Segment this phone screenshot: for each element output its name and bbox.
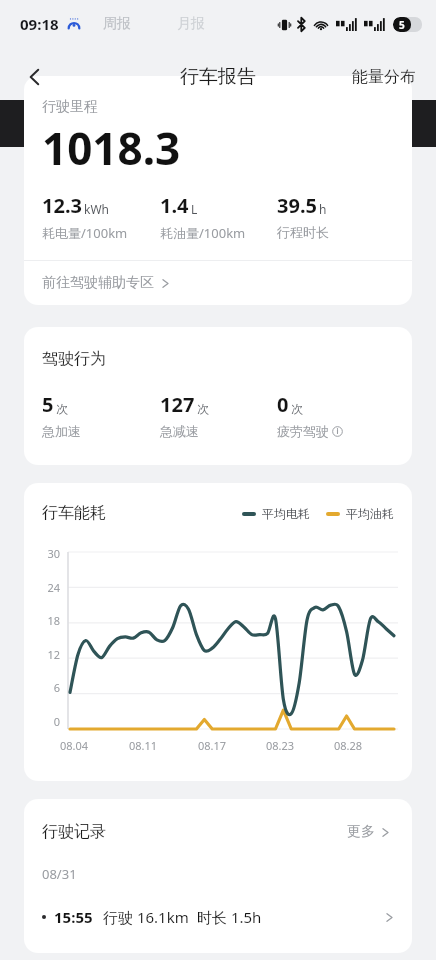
staticText: kWh (84, 201, 109, 217)
staticText: h (319, 201, 327, 217)
staticText: 周报 (103, 15, 131, 33)
staticText: 耗电量/100km (42, 224, 128, 242)
staticText: 15:55 (54, 907, 93, 927)
staticText: 08.04 (60, 738, 129, 753)
staticText: 平均油耗 (346, 506, 394, 521)
button[interactable]: 月报 (165, 12, 217, 36)
staticText: 39.5 (277, 192, 317, 219)
staticText: 0 (277, 391, 289, 418)
button[interactable]: Back (18, 60, 52, 94)
button[interactable]: 更多 (343, 819, 394, 845)
staticText: 1018.3 (42, 118, 181, 178)
staticText: 5 (399, 18, 405, 32)
staticText: 0 (38, 714, 60, 729)
staticText: 行驶 16.1km (103, 907, 189, 927)
staticText: 08.28 (334, 738, 402, 753)
staticText: 08.11 (129, 738, 198, 753)
staticText: 急减速 (160, 423, 199, 439)
staticText: 更多 (347, 823, 375, 841)
other: Info (332, 426, 343, 437)
staticText: 行驶记录 (42, 822, 106, 842)
staticText: 30 (38, 546, 60, 561)
staticText: 24 (38, 580, 60, 595)
staticText: 疲劳驾驶 (277, 423, 329, 439)
staticText: L (191, 201, 198, 217)
staticText: 12.3 (42, 192, 82, 219)
staticText: 行程时长 (277, 224, 329, 240)
staticText: 127 (160, 391, 195, 418)
staticText: 12 (38, 647, 60, 662)
button[interactable]: 周报 (91, 12, 143, 36)
staticText: 1.4 (160, 192, 189, 219)
staticText: 驾驶行为 (42, 349, 106, 369)
staticText: 08.23 (266, 738, 334, 753)
staticText: 行驶里程 (42, 98, 98, 116)
staticText: 次 (197, 401, 209, 416)
staticText: 耗油量/100km (160, 224, 246, 242)
staticText: 09:18 (20, 14, 59, 34)
button[interactable]: 15:55 (24, 901, 412, 933)
staticText: 5 (42, 391, 54, 418)
staticText: 平均电耗 (262, 506, 310, 521)
staticText: 08/31 (42, 865, 77, 883)
staticText: 时长 1.5h (197, 907, 262, 927)
staticText: 月报 (177, 15, 205, 33)
staticText: 18 (38, 613, 60, 628)
staticText: 次 (291, 401, 303, 416)
staticText: 能量分布 (352, 67, 416, 87)
staticText: 行车报告 (180, 65, 256, 89)
staticText: 6 (38, 680, 60, 695)
staticText: 前往驾驶辅助专区 (42, 274, 154, 292)
button[interactable]: 能量分布 (348, 63, 420, 91)
staticText: 次 (56, 401, 68, 416)
staticText: 08.17 (198, 738, 266, 753)
staticText: 急加速 (42, 423, 81, 439)
staticText: 行车能耗 (42, 503, 106, 523)
button[interactable]: 前往驾驶辅助专区 (24, 261, 412, 305)
